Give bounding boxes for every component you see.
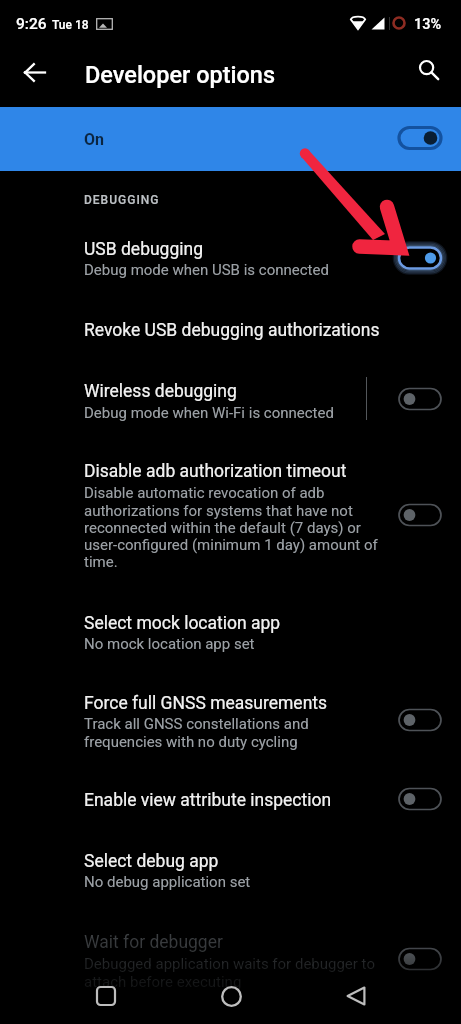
button[interactable]: Home <box>211 976 251 1016</box>
staticText: Force full GNSS measurements <box>84 693 328 714</box>
staticText: On <box>84 130 104 149</box>
button[interactable] <box>0 680 461 756</box>
button[interactable]: Enable view attribute inspection <box>394 782 446 816</box>
staticText: USB debugging <box>84 239 204 260</box>
button[interactable] <box>0 920 461 990</box>
staticText: Wait for debugger <box>84 932 223 953</box>
button[interactable] <box>0 305 461 353</box>
staticText: DEBUGGING <box>84 193 160 207</box>
staticText: Enable view attribute inspection <box>84 790 332 811</box>
staticText: Disable adb authorization timeout <box>84 461 347 482</box>
staticText: Wireless debugging <box>84 381 237 402</box>
button[interactable]: USB debugging <box>394 241 446 275</box>
button[interactable]: On <box>0 107 461 171</box>
button[interactable]: Back <box>14 52 54 92</box>
staticText: Debug mode when USB is connected <box>84 261 384 279</box>
button[interactable]: Recents <box>86 976 126 1016</box>
button[interactable] <box>0 368 461 428</box>
staticText: No debug application set <box>84 873 384 891</box>
staticText: 13% <box>414 16 442 33</box>
staticText: 9:26 <box>16 15 47 33</box>
button[interactable]: Wireless debugging <box>394 382 446 416</box>
staticText: Developer options <box>85 61 276 89</box>
staticText: Debugged application waits for debugger … <box>84 955 384 990</box>
button[interactable] <box>0 600 461 660</box>
button[interactable] <box>0 448 461 586</box>
button[interactable]: Back <box>336 976 376 1016</box>
button[interactable]: Wait for debugger <box>394 942 446 976</box>
button[interactable] <box>0 840 461 900</box>
staticText: Select mock location app <box>84 613 281 634</box>
staticText: No mock location app set <box>84 635 384 653</box>
staticText: Select debug app <box>84 851 219 872</box>
button[interactable] <box>0 225 461 287</box>
staticText: Track all GNSS constellations and freque… <box>84 715 352 750</box>
staticText: Disable automatic revocation of adb auth… <box>84 484 384 570</box>
button[interactable] <box>0 778 461 822</box>
button[interactable]: Disable adb authorization timeout <box>394 498 446 532</box>
button[interactable]: Developer options toggle <box>394 121 446 155</box>
staticText: Debug mode when Wi-Fi is connected <box>84 404 384 422</box>
staticText: Revoke USB debugging authorizations <box>84 320 380 341</box>
button[interactable]: Force full GNSS measurements <box>394 703 446 737</box>
button[interactable]: Search <box>410 52 450 92</box>
staticText: Tue 18 <box>52 18 89 32</box>
